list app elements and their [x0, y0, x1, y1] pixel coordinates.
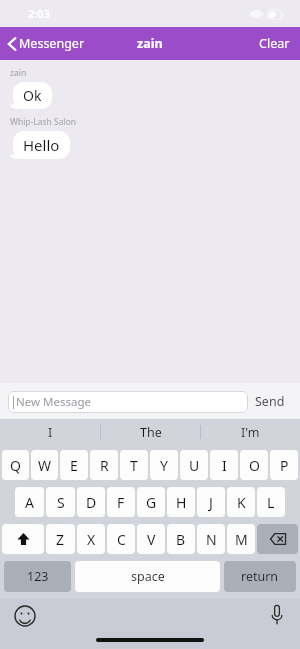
staticText: Y	[160, 456, 168, 475]
staticText: I	[222, 456, 227, 475]
button[interactable]: Ok	[13, 82, 52, 109]
staticText: Hello	[23, 135, 60, 155]
button[interactable]: Send	[248, 387, 292, 416]
button[interactable]: 123	[4, 561, 71, 592]
staticText: A	[25, 493, 34, 512]
button[interactable]: B	[167, 524, 195, 554]
button[interactable]: Z	[46, 524, 75, 554]
staticText: C	[117, 530, 126, 549]
button[interactable]: Messenger	[0, 31, 93, 56]
staticText: zain	[10, 67, 27, 79]
button[interactable]: Backspace	[257, 524, 298, 554]
button[interactable]: L	[257, 487, 285, 517]
staticText: M	[235, 530, 248, 549]
button[interactable]: I	[210, 450, 238, 480]
staticText: J	[209, 493, 213, 512]
button[interactable]: space	[75, 561, 220, 592]
button[interactable]: Shift	[2, 524, 44, 554]
button[interactable]: The	[101, 419, 200, 445]
staticText: G	[146, 493, 157, 512]
button[interactable]: N	[197, 524, 225, 554]
staticText: U	[189, 456, 200, 475]
staticText: 123	[27, 568, 49, 585]
staticText: Q	[10, 456, 21, 475]
button[interactable]: C	[107, 524, 135, 554]
staticText: zain	[137, 35, 163, 52]
staticText: E	[70, 456, 78, 475]
button[interactable]: return	[224, 561, 296, 592]
staticText: space	[131, 568, 165, 585]
button[interactable]: Clear	[249, 30, 300, 57]
button[interactable]: Hello	[13, 131, 70, 159]
button[interactable]: F	[107, 487, 135, 517]
staticText: V	[147, 530, 156, 549]
staticText: D	[86, 493, 97, 512]
staticText: Send	[255, 393, 285, 410]
staticText: Z	[56, 530, 65, 549]
staticText: Clear	[259, 35, 290, 52]
staticText: N	[206, 530, 217, 549]
button[interactable]: Q	[2, 450, 29, 480]
button[interactable]: M	[227, 524, 255, 554]
staticText: 2:03	[28, 6, 50, 21]
staticText: X	[87, 530, 96, 549]
staticText: F	[117, 493, 125, 512]
staticText: Whip-Lash Salon	[10, 116, 77, 128]
staticText: return	[241, 568, 279, 585]
button[interactable]: T	[120, 450, 148, 480]
button[interactable]: S	[46, 487, 75, 517]
button[interactable]: E	[60, 450, 88, 480]
staticText: B	[176, 530, 186, 549]
button[interactable]: A	[15, 487, 44, 517]
button[interactable]: Microphone	[270, 604, 284, 626]
button[interactable]: U	[180, 450, 208, 480]
staticText: K	[237, 493, 246, 512]
button[interactable]: R	[90, 450, 118, 480]
staticText: New Message	[16, 394, 91, 410]
staticText: I'm	[241, 424, 260, 441]
button[interactable]: D	[77, 487, 105, 517]
button[interactable]: X	[77, 524, 105, 554]
staticText: P	[280, 456, 289, 475]
button[interactable]: P	[270, 450, 298, 480]
staticText: The	[140, 424, 162, 441]
staticText: O	[249, 456, 260, 475]
button[interactable]: Emoji	[14, 605, 36, 627]
button[interactable]: New Message	[8, 391, 248, 413]
staticText: W	[38, 456, 52, 475]
button[interactable]: W	[31, 450, 58, 480]
button[interactable]: J	[197, 487, 225, 517]
button[interactable]: Y	[150, 450, 178, 480]
staticText: T	[130, 456, 138, 475]
staticText: Ok	[23, 86, 42, 105]
staticText: L	[267, 493, 275, 512]
button[interactable]: O	[240, 450, 268, 480]
staticText: S	[57, 493, 65, 512]
button[interactable]: V	[137, 524, 165, 554]
staticText: R	[100, 456, 109, 475]
button[interactable]: I	[0, 419, 100, 445]
staticText: Messenger	[19, 35, 85, 52]
button[interactable]: H	[167, 487, 195, 517]
button[interactable]: G	[137, 487, 165, 517]
staticText: I	[48, 424, 53, 441]
button[interactable]: I'm	[201, 419, 300, 445]
staticText: H	[176, 493, 187, 512]
button[interactable]: K	[227, 487, 255, 517]
